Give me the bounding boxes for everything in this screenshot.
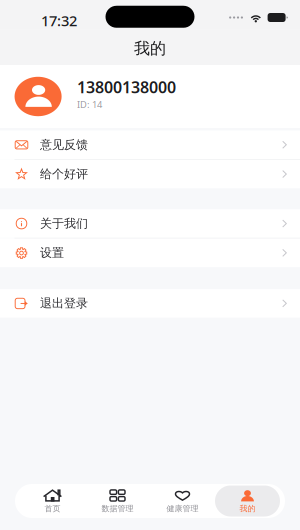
staticText: 关于我们 — [40, 216, 88, 231]
button[interactable]: 退出登录 — [0, 289, 300, 318]
staticText: 退出登录 — [40, 296, 88, 311]
button[interactable]: 首页 — [20, 485, 85, 516]
button[interactable]: 关于我们 — [0, 209, 300, 238]
staticText: 给个好评 — [40, 167, 88, 181]
staticText: 首页 — [44, 504, 60, 513]
button[interactable]: 13800138000 — [0, 65, 300, 128]
button[interactable]: 给个好评 — [0, 160, 300, 188]
staticText: 数据管理 — [101, 504, 133, 513]
staticText: 17:32 — [41, 11, 77, 30]
button[interactable]: 意见反馈 — [0, 130, 300, 159]
button[interactable]: 我的 — [215, 485, 280, 516]
staticText: 健康管理 — [166, 504, 198, 513]
staticText: 设置 — [40, 245, 64, 260]
button[interactable]: 设置 — [0, 239, 300, 267]
staticText: 我的 — [239, 504, 255, 513]
staticText: ID: 14 — [77, 98, 102, 111]
button[interactable]: 数据管理 — [85, 485, 150, 516]
staticText: 13800138000 — [77, 76, 176, 98]
button[interactable]: 健康管理 — [150, 485, 215, 516]
staticText: 意见反馈 — [40, 137, 88, 152]
staticText: 我的 — [134, 39, 166, 58]
